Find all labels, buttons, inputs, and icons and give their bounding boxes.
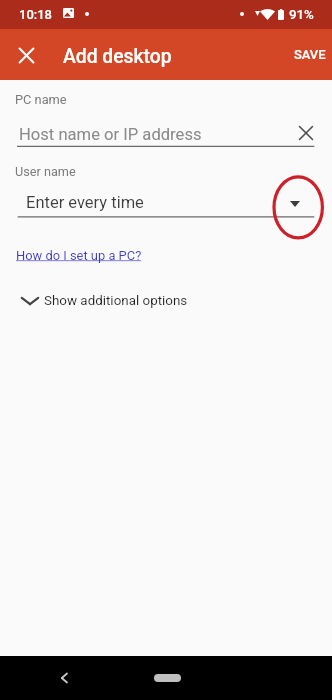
staticText: Enter every time xyxy=(26,193,144,212)
staticText: 10:18 xyxy=(19,7,52,22)
button[interactable]: Enter every time xyxy=(0,191,332,216)
staticText: PC name xyxy=(15,92,67,107)
button[interactable]: Host name or IP address xyxy=(0,120,332,146)
staticText: Host name or IP address xyxy=(19,125,202,144)
staticText: Add desktop xyxy=(63,45,172,68)
button[interactable]: Clear text xyxy=(294,121,318,145)
button[interactable]: How do I set up a PC? xyxy=(16,248,142,263)
staticText: How do I set up a PC? xyxy=(16,248,142,263)
button[interactable]: Close xyxy=(6,35,46,75)
staticText: 91% xyxy=(289,7,314,23)
button[interactable]: SAVE xyxy=(285,34,332,74)
button[interactable]: Open dropdown xyxy=(283,192,307,216)
staticText: Show additional options xyxy=(44,293,188,309)
staticText: User name xyxy=(15,164,76,179)
staticText: SAVE xyxy=(294,47,326,62)
button[interactable]: Show additional options xyxy=(0,282,332,320)
button[interactable]: Back xyxy=(48,662,80,694)
button[interactable]: Home xyxy=(154,674,181,682)
